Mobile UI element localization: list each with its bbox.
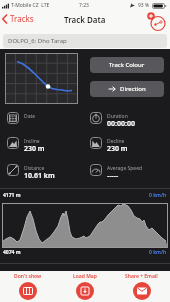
staticText: Duration	[107, 113, 128, 120]
staticText: 00:00:00	[107, 119, 135, 129]
button[interactable]: Don't show	[0, 271, 56, 300]
staticText: Direction	[120, 85, 146, 93]
staticText: Track Colour	[109, 61, 145, 69]
staticText: T-Mobile CZ LTE	[11, 2, 50, 9]
staticText: 4074 m	[3, 249, 21, 256]
staticText: DOLPO_6: Dho Tarap	[8, 37, 67, 45]
staticText: Distance	[24, 165, 45, 172]
button[interactable]: Load Map	[56, 271, 113, 300]
staticText: 0 km/h	[149, 192, 167, 199]
staticText: Load Map	[73, 273, 97, 280]
staticText: Incline	[24, 138, 40, 145]
staticText: Don't show	[14, 273, 42, 280]
staticText: Decline	[107, 138, 125, 145]
staticText: 230 m	[107, 144, 128, 154]
staticText: 93 %	[138, 2, 150, 9]
staticText: Average Speed	[107, 165, 143, 172]
button[interactable]: Share + Email	[113, 271, 170, 300]
staticText: Share + Email	[125, 273, 158, 280]
staticText: 10.61 km	[24, 171, 55, 181]
staticText: 230 m	[24, 144, 45, 154]
staticText: 4171 m	[3, 192, 21, 199]
staticText: Tracks	[10, 13, 34, 24]
staticText: 7:23	[79, 2, 89, 9]
button[interactable]	[146, 11, 167, 32]
button[interactable]: Direction	[90, 81, 164, 97]
button[interactable]: DOLPO_6: Dho Tarap	[3, 34, 167, 48]
button[interactable]: Tracks	[2, 13, 34, 24]
button[interactable]: Track Colour	[90, 57, 164, 73]
staticText: Date	[24, 113, 36, 120]
staticText: -----	[107, 171, 119, 181]
staticText: Track Data	[64, 14, 106, 25]
staticText: 0 km/h	[149, 249, 167, 256]
